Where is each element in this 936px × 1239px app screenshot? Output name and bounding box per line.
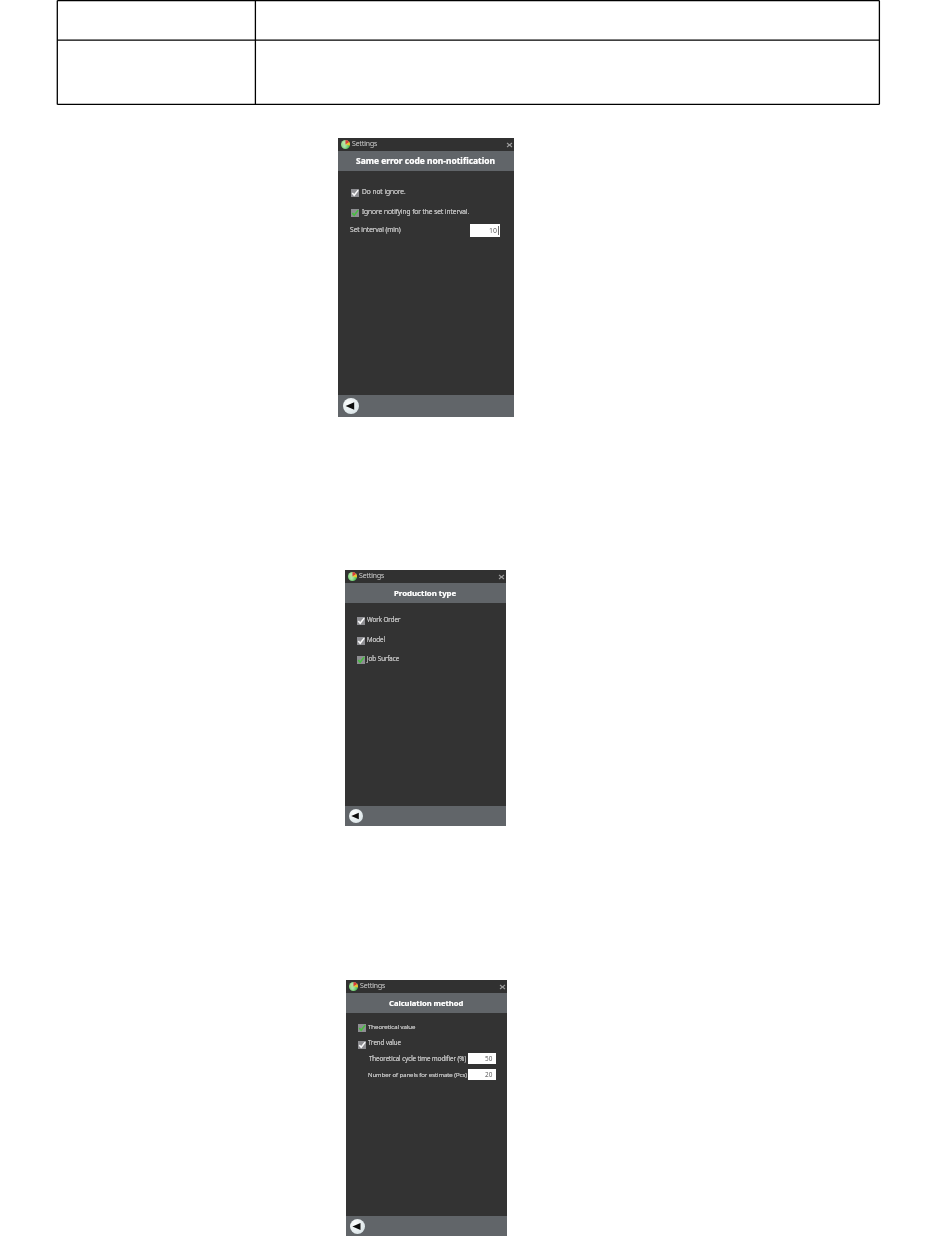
staticText: Do not ignore. bbox=[362, 187, 406, 196]
staticText: 20 bbox=[485, 1070, 493, 1079]
staticText: Work Order bbox=[367, 615, 401, 624]
button[interactable]: Checkbox bbox=[351, 188, 406, 197]
staticText: 50 bbox=[485, 1054, 493, 1063]
button[interactable]: Value field bbox=[468, 1069, 496, 1080]
staticText: Production type bbox=[394, 588, 457, 599]
staticText: Model bbox=[367, 635, 385, 644]
staticText: Ignore notifying for the set interval. bbox=[362, 207, 470, 216]
button[interactable]: Back bbox=[350, 1219, 365, 1234]
button[interactable]: Checkbox bbox=[358, 1040, 402, 1049]
button[interactable]: Close bbox=[506, 141, 513, 148]
button[interactable]: Checkbox bbox=[357, 617, 365, 625]
button[interactable]: Value field bbox=[468, 1053, 496, 1064]
button[interactable]: Back bbox=[343, 398, 359, 414]
button[interactable]: Checkbox bbox=[357, 656, 365, 664]
staticText: Set interval (min) bbox=[350, 225, 401, 234]
button[interactable]: Checkbox bbox=[351, 209, 359, 217]
staticText: 10 bbox=[489, 226, 498, 236]
button[interactable]: Close bbox=[499, 983, 506, 990]
button[interactable]: Checkbox bbox=[351, 189, 359, 197]
staticText: Trend value bbox=[368, 1038, 402, 1047]
staticText: Settings bbox=[360, 981, 386, 990]
button[interactable]: Value field bbox=[470, 224, 500, 237]
staticText: Settings bbox=[352, 139, 378, 148]
staticText: Calculation method bbox=[389, 998, 464, 1008]
button[interactable]: Checkbox bbox=[351, 208, 470, 217]
staticText: Same error code non-notification bbox=[356, 155, 496, 167]
button[interactable]: Checkbox bbox=[358, 1041, 366, 1049]
staticText: Theoretical value bbox=[368, 1022, 416, 1030]
button[interactable]: Close bbox=[498, 573, 505, 580]
button[interactable]: Checkbox bbox=[357, 636, 385, 645]
staticText: Settings bbox=[359, 571, 385, 580]
button[interactable]: Back bbox=[349, 809, 363, 823]
staticText: Job Surface bbox=[367, 654, 400, 663]
button[interactable]: Checkbox bbox=[357, 616, 401, 625]
button[interactable]: Checkbox bbox=[357, 655, 400, 664]
button[interactable]: Checkbox bbox=[358, 1024, 366, 1032]
button[interactable]: Checkbox bbox=[358, 1024, 416, 1032]
staticText: Number of panels for estimate (Pcs) bbox=[368, 1070, 467, 1078]
staticText: Theoretical cycle time modifier (%) bbox=[369, 1054, 467, 1063]
button[interactable]: Checkbox bbox=[357, 637, 365, 645]
